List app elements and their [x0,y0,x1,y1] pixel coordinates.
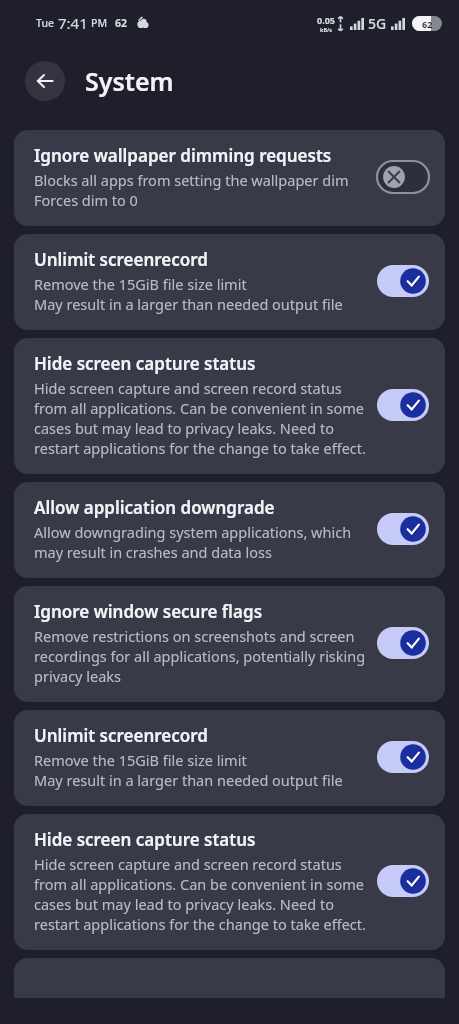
button[interactable]: Hide screen capture status [14,814,445,950]
staticText: Hide screen capture and screen record st… [34,378,367,458]
staticText: 0.05 [317,14,335,26]
staticText: Ignore wallpaper dimming requests [34,144,332,167]
staticText: 62 [115,16,128,30]
staticText: Tue [36,16,54,30]
staticText: Allow application downgrade [34,496,275,519]
staticText: Remove the 15GiB file size limit May res… [34,274,343,314]
staticText: Allow downgrading system applications, w… [34,522,367,562]
button[interactable]: Toggle off [377,161,429,193]
staticText: Hide screen capture status [34,828,256,851]
button[interactable]: Unlimit screenrecord [14,234,445,330]
button[interactable]: Toggle on [377,865,429,897]
staticText: System [85,64,174,98]
button[interactable]: Ignore wallpaper dimming requests [14,130,445,226]
button[interactable]: Hide screen capture status [14,338,445,474]
staticText: 7:41 [58,13,88,33]
button[interactable]: Toggle on [377,389,429,421]
staticText: PM [91,16,108,30]
staticText: Unlimit screenrecord [34,248,208,271]
button[interactable]: Toggle on [377,513,429,545]
staticText: 5G [368,14,387,33]
button[interactable]: Unlimit screenrecord [14,710,445,806]
button[interactable]: Toggle on [377,265,429,297]
staticText: Unlimit screenrecord [34,724,208,747]
staticText: Blocks all apps from setting the wallpap… [34,170,349,210]
button[interactable]: Allow application downgrade [14,482,445,578]
button[interactable]: Ignore window secure flags [14,586,445,702]
staticText: kB/s [320,26,333,33]
staticText: Remove the 15GiB file size limit May res… [34,750,343,790]
button[interactable]: Toggle on [377,741,429,773]
staticText: Remove restrictions on screenshots and s… [34,626,367,686]
staticText: Hide screen capture and screen record st… [34,854,367,934]
staticText: 62 [422,18,433,30]
button[interactable]: Toggle on [377,627,429,659]
button[interactable]: Back [25,61,65,101]
staticText: Ignore window secure flags [34,600,263,623]
staticText: Hide screen capture status [34,352,256,375]
